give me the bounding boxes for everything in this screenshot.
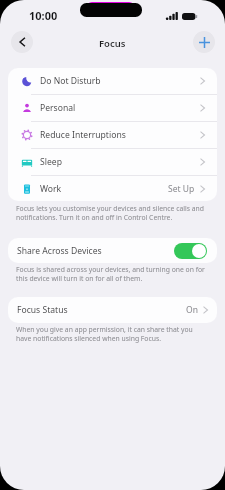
staticText: Focus is shared across your devices, and… xyxy=(16,265,209,283)
staticText: Work xyxy=(40,183,62,195)
staticText: Set Up xyxy=(168,183,195,195)
staticText: Reduce Interruptions xyxy=(40,129,126,141)
staticText: Share Across Devices xyxy=(17,245,102,257)
button[interactable]: Do Not Disturb xyxy=(8,68,217,95)
staticText: When you give an app permission, it can … xyxy=(16,325,209,343)
staticText: Do Not Disturb xyxy=(40,75,101,87)
staticText: Focus xyxy=(99,37,126,50)
button[interactable]: Add Focus xyxy=(193,31,215,53)
button[interactable]: Reduce Interruptions xyxy=(8,122,217,149)
staticText: 10:00 xyxy=(29,8,58,23)
button[interactable]: Back xyxy=(11,31,33,53)
button[interactable]: Share Across Devices xyxy=(17,238,207,263)
button[interactable]: Work xyxy=(8,176,217,201)
staticText: Focus lets you customise your devices an… xyxy=(16,204,209,222)
button[interactable]: Sleep xyxy=(8,149,217,176)
staticText: Personal xyxy=(40,102,76,114)
staticText: Focus Status xyxy=(17,304,68,316)
staticText: Sleep xyxy=(40,156,62,168)
staticText: On xyxy=(186,304,198,316)
button[interactable]: Focus Status xyxy=(17,297,208,323)
button[interactable]: Personal xyxy=(8,95,217,122)
